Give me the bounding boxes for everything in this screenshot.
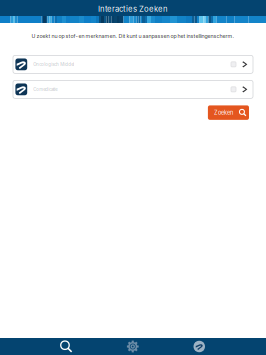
button[interactable]: App bbox=[166, 338, 232, 355]
staticText: Oncologisch Middel bbox=[33, 62, 74, 67]
button[interactable]: Oncologisch Middel bbox=[13, 55, 253, 73]
staticText: Comedicatie bbox=[33, 87, 57, 92]
button[interactable]: Comedicatie bbox=[13, 80, 253, 98]
button[interactable]: Instellingen bbox=[99, 338, 166, 355]
staticText: Zoeken bbox=[214, 109, 233, 116]
button[interactable]: Zoeken bbox=[33, 338, 99, 355]
button[interactable]: Zoeken bbox=[208, 105, 249, 120]
staticText: Interacties Zoeken bbox=[98, 4, 168, 14]
staticText: U zoekt nu op stof- en merknamen. Dit ku… bbox=[31, 33, 234, 39]
